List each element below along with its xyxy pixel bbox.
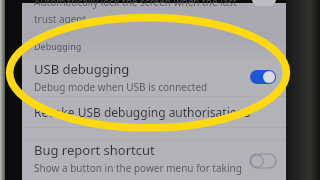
staticText: trust agent ... [34,12,97,25]
button[interactable]: USB debugging on [250,70,276,84]
button[interactable]: Bug report shortcut off [250,154,276,168]
button[interactable]: Revoke USB debugging authorisations [22,97,288,127]
staticText: USB debugging [34,60,130,78]
staticText: Debug mode when USB is connected [34,80,208,94]
staticText: Debugging [34,40,82,52]
button[interactable]: USB debugging [22,58,288,96]
staticText: Show a button in the power menu for taki… [34,161,250,180]
staticText: Bug report shortcut [34,141,155,159]
button[interactable]: Bug report shortcut [22,141,288,180]
staticText: Revoke USB debugging authorisations [34,104,251,120]
staticText: Automatically lock the screen when the l… [34,0,237,9]
